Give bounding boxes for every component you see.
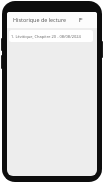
button[interactable]: Clear history [76,15,85,24]
button[interactable]: 1. Lévitique, Chapitre 20 - 08/08/2024 [9,30,93,42]
staticText: 1. Lévitique, Chapitre 20 - 08/08/2024 [11,34,81,39]
staticText: Historique de lecture [13,16,67,23]
